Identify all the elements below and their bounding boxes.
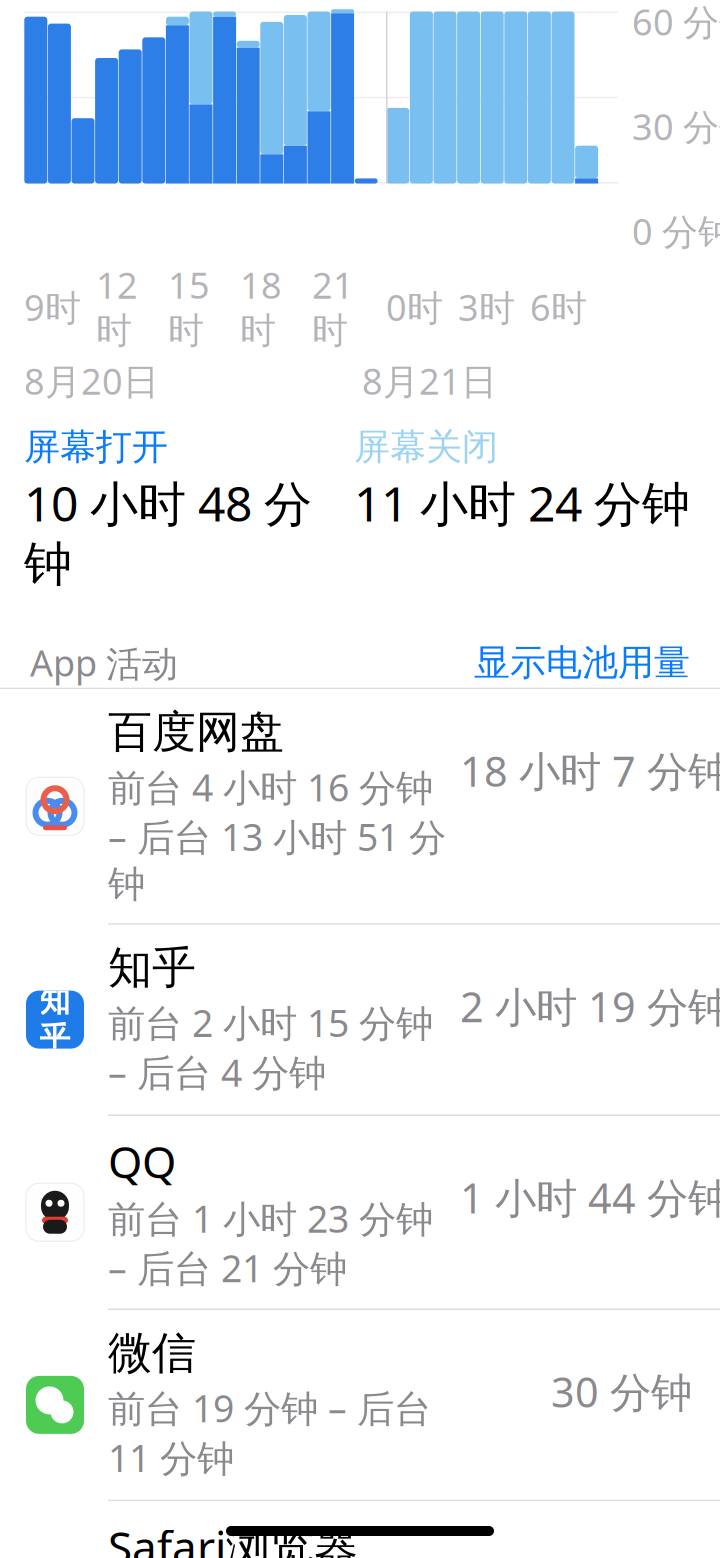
staticText: 前台 4 小时 16 分钟 – 后台 13 小时 51 分钟 [108, 762, 446, 907]
staticText: 21时 [312, 261, 354, 353]
staticText: App 活动 [30, 639, 178, 687]
staticText: 0时 [386, 283, 443, 331]
staticText: 30 分钟 [551, 1364, 692, 1419]
staticText: 8月20日 [24, 357, 159, 405]
staticText: 前台 2 小时 15 分钟 – 后台 4 分钟 [108, 998, 433, 1097]
button[interactable]: 百度网盘 [0, 689, 720, 923]
staticText: 12时 [96, 261, 138, 353]
staticText: 11 小时 24 分钟 [354, 471, 690, 535]
button[interactable]: 微信 [0, 1310, 720, 1500]
staticText: 屏幕关闭 [354, 425, 498, 469]
button[interactable]: QQ [0, 1116, 720, 1309]
staticText: 2 小时 19 分钟 [460, 979, 720, 1034]
staticText: 3时 [458, 283, 515, 331]
staticText: 百度网盘 [108, 705, 284, 759]
staticText: 0 分钟 [632, 207, 720, 255]
staticText: 10 小时 48 分钟 [24, 471, 312, 594]
staticText: 知乎 [108, 941, 196, 995]
button[interactable]: 显示电池用量 [474, 635, 690, 691]
staticText: 18时 [240, 261, 282, 353]
staticText: 8月21日 [362, 357, 497, 405]
staticText: 1 小时 44 分钟 [460, 1170, 720, 1225]
staticText: 屏幕打开 [24, 425, 168, 469]
staticText: 前台 1 小时 23 分钟 – 后台 21 分钟 [108, 1193, 433, 1293]
staticText: 15时 [168, 261, 210, 353]
staticText: 18 小时 7 分钟 [460, 743, 720, 798]
staticText: QQ [108, 1132, 176, 1190]
button[interactable]: ◆ [0, 1501, 720, 1558]
staticText: 9时 [24, 283, 81, 331]
staticText: Safari浏览器 [108, 1517, 358, 1558]
staticText: 60 分钟 [632, 0, 720, 45]
staticText: 6时 [530, 283, 587, 331]
button[interactable]: 知乎 [0, 925, 720, 1114]
staticText: 微信 [108, 1326, 196, 1380]
staticText: 显示电池用量 [474, 641, 690, 685]
staticText: 前台 19 分钟 – 后台 11 分钟 [108, 1383, 431, 1482]
staticText: 知乎 [39, 982, 70, 1057]
staticText: 30 分钟 [632, 102, 720, 150]
